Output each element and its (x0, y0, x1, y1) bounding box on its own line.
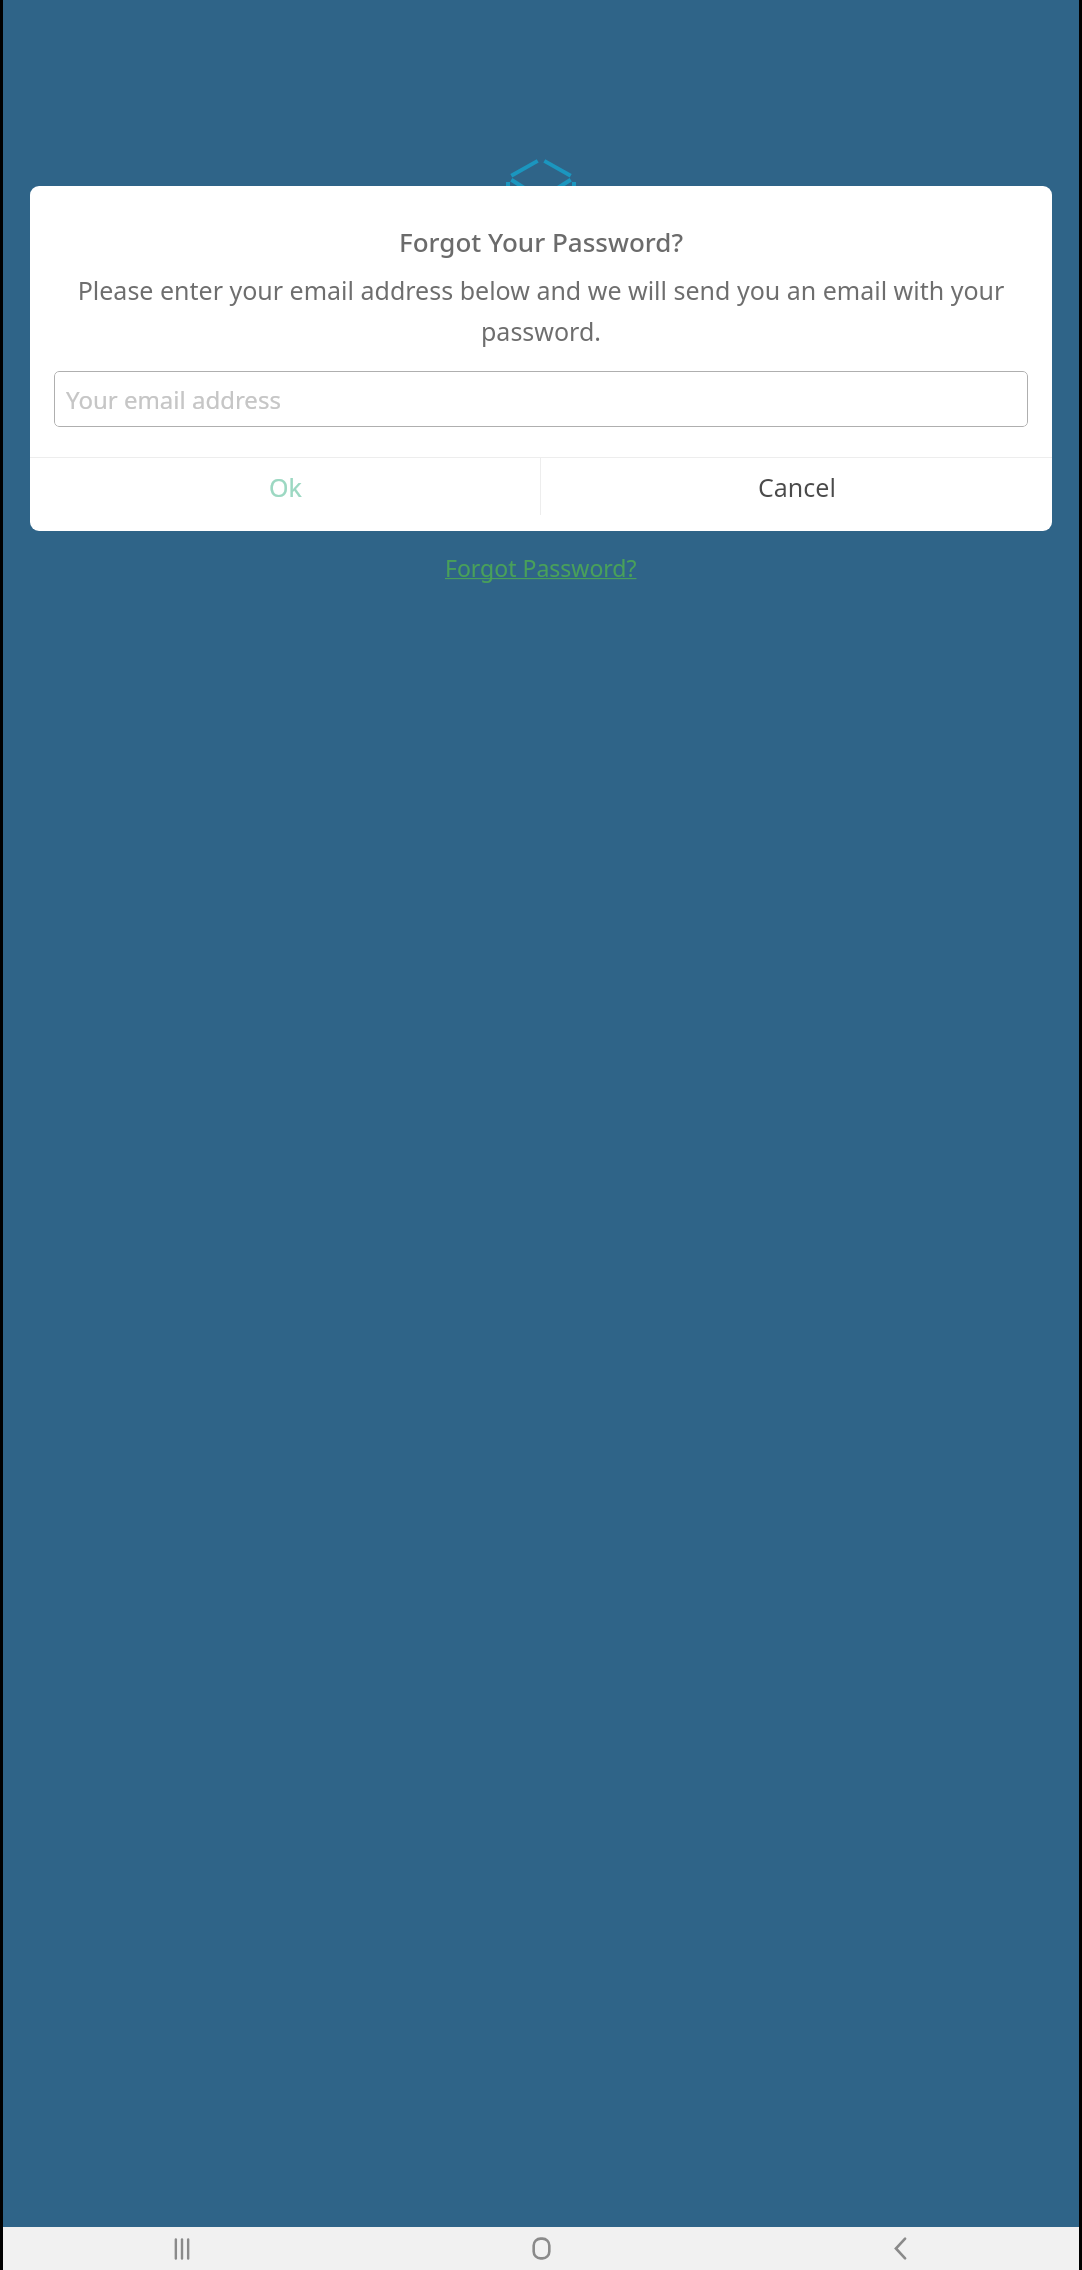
staticText: Cancel (758, 470, 836, 504)
button[interactable]: Ok (30, 458, 540, 515)
staticText: Please enter your email address below an… (52, 273, 1030, 349)
button[interactable]: Log In (51, 466, 1031, 524)
staticText: Forgot Your Password? (50, 224, 1032, 259)
staticText: Your email address (66, 383, 281, 416)
button[interactable]: Cancel (541, 458, 1052, 515)
button[interactable]: Home (510, 2227, 572, 2270)
button[interactable]: Your email address (54, 371, 1028, 427)
button[interactable]: Back (869, 2227, 931, 2270)
button[interactable]: Recent apps (151, 2227, 213, 2270)
button[interactable]: Forgot Password? (445, 552, 637, 583)
staticText: Ok (269, 470, 302, 504)
staticText: Forgot Password? (445, 552, 637, 583)
